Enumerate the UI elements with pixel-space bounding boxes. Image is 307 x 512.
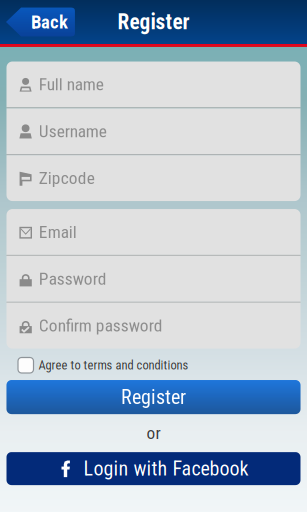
button[interactable]: Confirm password [6, 303, 300, 349]
staticText: Agree to terms and conditions [38, 358, 188, 373]
button[interactable]: Back [5, 6, 75, 37]
staticText: or [146, 423, 160, 443]
button[interactable]: Register [6, 380, 300, 414]
staticText: Zipcode [39, 168, 95, 188]
button[interactable]: Password [6, 256, 300, 302]
button[interactable]: Zipcode [6, 155, 300, 201]
button[interactable]: Agree to terms and conditions [0, 357, 307, 373]
button[interactable]: Username [6, 108, 300, 154]
button[interactable]: Email [6, 209, 300, 255]
staticText: Email [39, 222, 77, 242]
staticText: Password [39, 269, 107, 289]
button[interactable]: Login with Facebook [6, 452, 300, 485]
button[interactable]: Full name [6, 61, 300, 107]
staticText: Register [121, 385, 186, 409]
staticText: Confirm password [39, 315, 163, 336]
staticText: Full name [39, 74, 104, 95]
staticText: Username [39, 121, 107, 141]
staticText: Login with Facebook [83, 457, 248, 480]
staticText: Back [31, 11, 68, 33]
staticText: Register [117, 9, 189, 34]
